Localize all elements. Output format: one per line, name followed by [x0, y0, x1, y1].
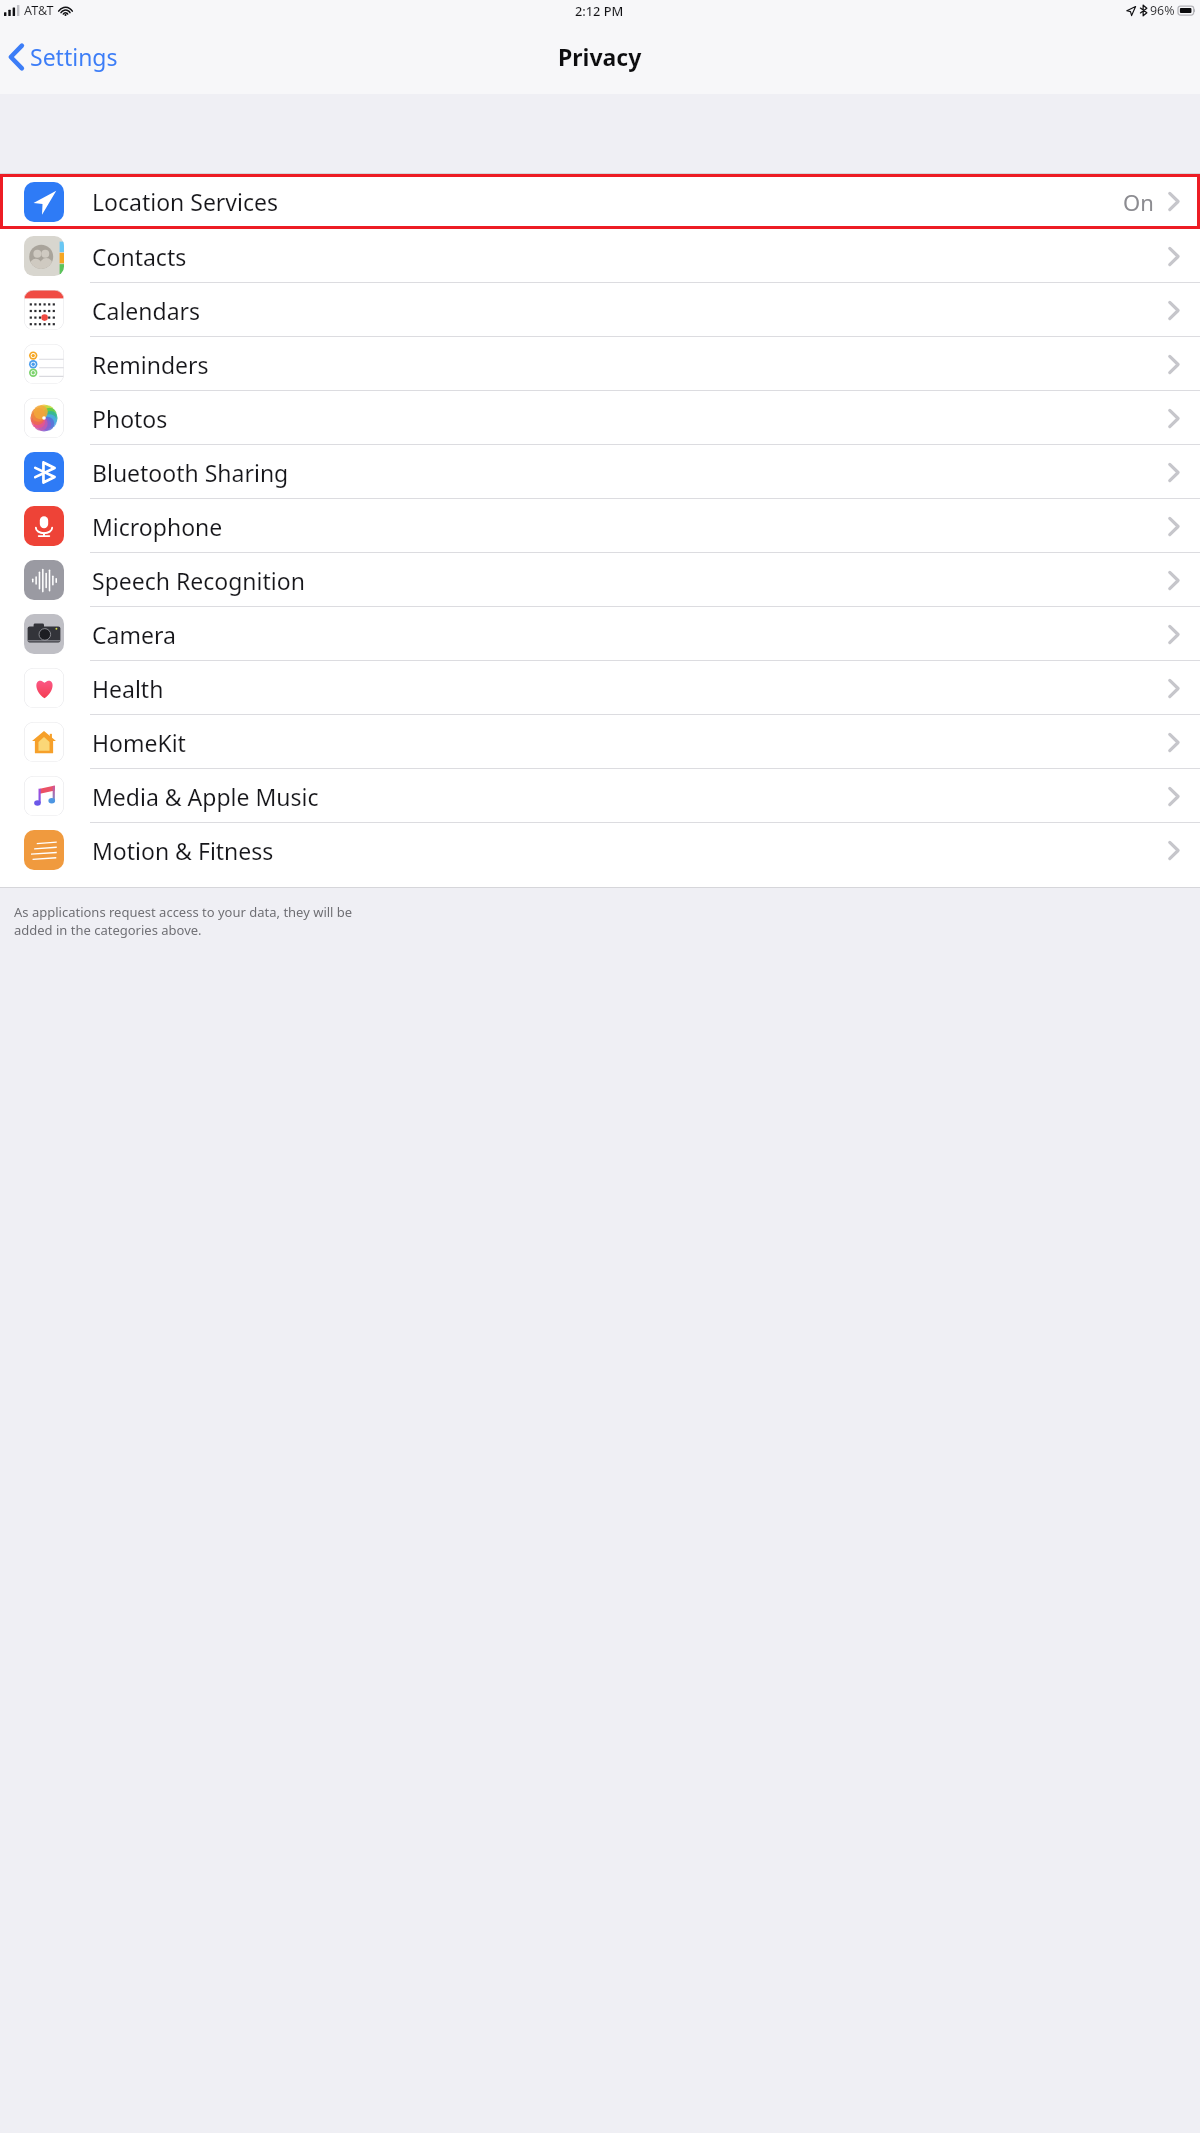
- staticText: HomeKit: [92, 727, 186, 758]
- staticText: Speech Recognition: [92, 565, 305, 596]
- staticText: Reminders: [92, 349, 209, 380]
- staticText: 2:12 PM: [575, 2, 624, 19]
- button[interactable]: Microphone: [0, 499, 1200, 553]
- staticText: As applications request access to your d…: [14, 903, 353, 939]
- staticText: Privacy: [558, 41, 642, 72]
- button[interactable]: Contacts: [0, 229, 1200, 283]
- button[interactable]: Location Services: [0, 174, 1200, 229]
- button[interactable]: Media & Apple Music: [0, 769, 1200, 823]
- button[interactable]: Speech Recognition: [0, 553, 1200, 607]
- staticText: AT&T: [24, 2, 54, 19]
- button[interactable]: Calendars: [0, 283, 1200, 337]
- staticText: On: [1123, 187, 1154, 217]
- button[interactable]: Camera: [0, 607, 1200, 661]
- staticText: Settings: [30, 41, 118, 72]
- button[interactable]: Photos: [0, 391, 1200, 445]
- button[interactable]: Reminders: [0, 337, 1200, 391]
- staticText: Bluetooth Sharing: [92, 457, 289, 488]
- button[interactable]: Bluetooth Sharing: [0, 445, 1200, 499]
- button[interactable]: Health: [0, 661, 1200, 715]
- staticText: Health: [92, 673, 164, 704]
- button[interactable]: Settings: [0, 37, 128, 76]
- staticText: Motion & Fitness: [92, 835, 274, 866]
- button[interactable]: HomeKit: [0, 715, 1200, 769]
- staticText: Location Services: [92, 186, 279, 217]
- staticText: Camera: [92, 619, 176, 650]
- staticText: 96%: [1150, 2, 1175, 19]
- staticText: Photos: [92, 403, 168, 434]
- button[interactable]: Motion & Fitness: [0, 823, 1200, 877]
- staticText: Microphone: [92, 511, 223, 542]
- staticText: Calendars: [92, 295, 201, 326]
- staticText: Contacts: [92, 241, 187, 272]
- staticText: Media & Apple Music: [92, 781, 319, 812]
